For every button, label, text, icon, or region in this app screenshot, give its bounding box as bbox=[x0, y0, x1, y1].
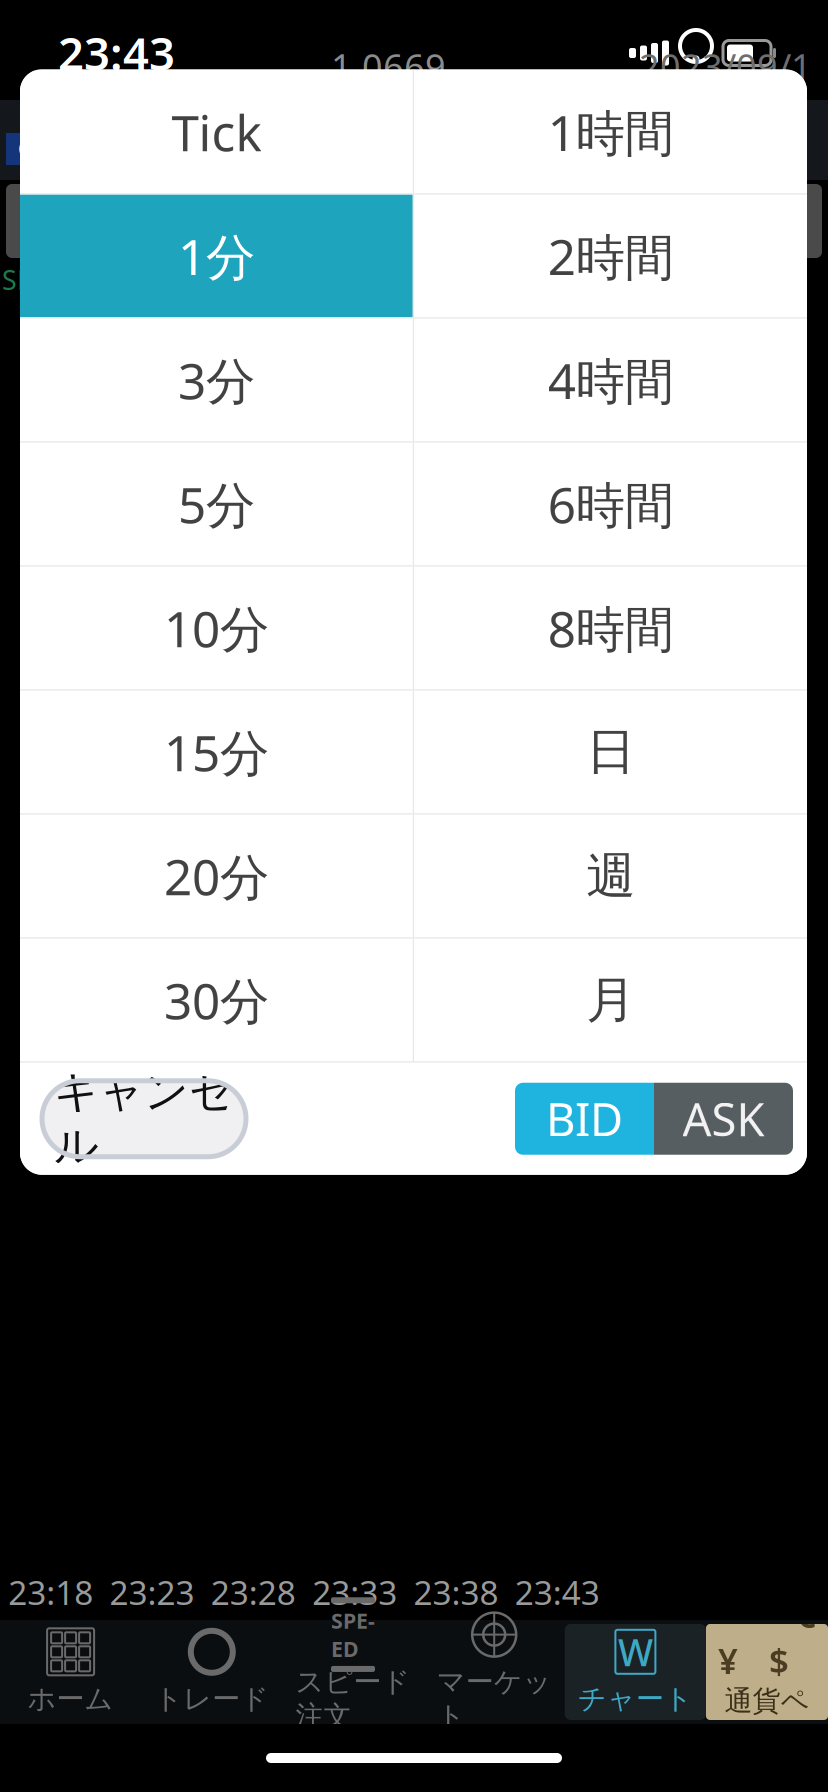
button[interactable]: 月 bbox=[414, 937, 807, 1061]
button[interactable]: Toolbar option bbox=[663, 184, 822, 258]
button[interactable]: 2時間 bbox=[414, 193, 807, 317]
button[interactable]: 6時間 bbox=[414, 441, 807, 565]
button[interactable]: 15分 bbox=[20, 689, 413, 813]
staticText: 20分 bbox=[164, 843, 269, 909]
staticText: 23:43 bbox=[58, 23, 175, 83]
staticText: 23:43 bbox=[515, 1570, 600, 1614]
staticText: W bbox=[618, 1627, 653, 1677]
button[interactable]: Toolbar option bbox=[170, 184, 329, 258]
staticText: 5分 bbox=[178, 471, 255, 537]
button[interactable]: 通貨ペア bbox=[706, 1624, 828, 1720]
button[interactable]: マーケット bbox=[424, 1624, 565, 1720]
button[interactable]: SPEED bbox=[282, 1624, 424, 1720]
staticText: 23:23 bbox=[109, 1570, 194, 1614]
staticText: 通貨ペア bbox=[724, 1684, 809, 1752]
staticText: 8時間 bbox=[548, 595, 674, 661]
staticText: 30分 bbox=[164, 967, 269, 1033]
staticText: BID bbox=[394, 234, 434, 264]
button[interactable]: 10分 bbox=[20, 565, 413, 689]
staticText: 2時間 bbox=[548, 223, 674, 289]
staticText: C:1.06679 bbox=[464, 166, 633, 214]
staticText: 2023/09/14 bbox=[639, 42, 812, 138]
staticText: 1.06691 bbox=[331, 42, 446, 138]
staticText: SP: 0.4 bbox=[137, 166, 250, 214]
staticText: 1時間 bbox=[548, 99, 674, 165]
button[interactable]: BID bbox=[515, 1083, 654, 1155]
button[interactable]: 20分 bbox=[20, 813, 413, 937]
staticText: 月 bbox=[586, 970, 635, 1030]
staticText: マーケット bbox=[437, 1665, 552, 1733]
staticText: 4時間 bbox=[548, 347, 674, 413]
button[interactable]: Action bbox=[499, 184, 658, 258]
button[interactable]: トレード bbox=[141, 1624, 282, 1720]
button[interactable]: 1分 bbox=[20, 193, 413, 317]
staticText: Action bbox=[541, 164, 654, 278]
staticText: 10分 bbox=[164, 595, 269, 661]
staticText: ASK bbox=[682, 1089, 764, 1149]
button[interactable]: キャンセル bbox=[42, 1081, 246, 1157]
staticText: L: bbox=[464, 66, 493, 114]
staticText: 1分 bbox=[380, 178, 447, 234]
staticText: 23:33 bbox=[312, 1570, 397, 1614]
staticText: スピード注文 bbox=[295, 1665, 410, 1733]
staticText: 3分 bbox=[178, 347, 255, 413]
button[interactable]: ASK bbox=[654, 1083, 793, 1155]
staticText: 15分 bbox=[164, 719, 269, 785]
staticText: € bbox=[796, 1592, 816, 1638]
staticText: 23:43 bbox=[718, 166, 812, 214]
staticText: SM bbox=[2, 262, 41, 297]
staticText: 23:18 bbox=[8, 1570, 93, 1614]
button[interactable]: 4時間 bbox=[414, 317, 807, 441]
staticText: SPEED bbox=[331, 1606, 375, 1663]
staticText: 23:38 bbox=[413, 1570, 498, 1614]
staticText: EUR/USD bbox=[94, 61, 287, 119]
button[interactable]: 週 bbox=[414, 813, 807, 937]
staticText: トレード bbox=[154, 1682, 269, 1716]
staticText: O:1.06687 bbox=[294, 142, 430, 238]
button[interactable]: 8時間 bbox=[414, 565, 807, 689]
staticText: 1.06664 bbox=[493, 66, 629, 114]
staticText: ホーム bbox=[28, 1682, 114, 1716]
button[interactable]: 1分 bbox=[334, 184, 494, 258]
button[interactable]: Tick bbox=[20, 69, 413, 193]
staticText: 週 bbox=[586, 846, 635, 906]
staticText: 23:28 bbox=[211, 1570, 296, 1614]
button[interactable]: 30分 bbox=[20, 937, 413, 1061]
button[interactable]: W bbox=[565, 1624, 706, 1720]
staticText: BID bbox=[546, 1089, 623, 1149]
staticText: 1分 bbox=[178, 223, 255, 289]
staticText: H: bbox=[294, 66, 331, 114]
staticText: Tick bbox=[171, 99, 261, 165]
button[interactable]: 5分 bbox=[20, 441, 413, 565]
staticText: キャンセル bbox=[54, 1065, 234, 1173]
staticText: 6時間 bbox=[548, 471, 674, 537]
button[interactable]: ホーム bbox=[0, 1624, 141, 1720]
staticText: チャート bbox=[578, 1682, 693, 1716]
button[interactable]: 1時間 bbox=[414, 69, 807, 193]
staticText: 日 bbox=[586, 722, 635, 782]
button[interactable]: 3分 bbox=[20, 317, 413, 441]
button[interactable]: Toolbar option bbox=[6, 184, 165, 258]
button[interactable]: 日 bbox=[414, 689, 807, 813]
staticText: $ bbox=[769, 1638, 789, 1684]
staticText: ¥ bbox=[718, 1638, 738, 1684]
